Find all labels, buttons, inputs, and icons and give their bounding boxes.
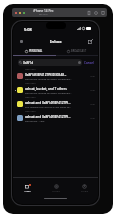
button[interactable]: Cancel [84, 61, 94, 65]
button[interactable]: Clear search [78, 61, 81, 64]
button[interactable]: BROADCAST [55, 47, 98, 55]
staticText: ashvat.eth unread an event scheduled… [25, 91, 72, 94]
staticText: Profile [81, 190, 88, 193]
staticText: PERSONAL [29, 49, 43, 53]
staticText: Inbox [50, 39, 62, 45]
staticText: iPhone 14 Pro [33, 9, 54, 13]
button[interactable]: More options [101, 11, 105, 15]
staticText: 16m [90, 75, 95, 78]
button[interactable]: Screenshot [94, 11, 98, 15]
staticText: BROADCAST [71, 49, 87, 53]
staticText: 16m [90, 103, 95, 106]
staticText: MESSAGES [25, 82, 36, 85]
button[interactable]: Portals [42, 178, 70, 198]
button[interactable]: MESSAGES [13, 95, 98, 109]
button[interactable]: New message [88, 39, 93, 44]
button[interactable]: PERSONAL [13, 47, 55, 55]
staticText: ashvat.eth unread an event scheduled… [25, 77, 72, 80]
staticText: ashvat.eth · 16m [25, 119, 45, 122]
staticText: ashcat, bucket, and 7 others [25, 87, 67, 91]
staticText: ashvat and 0x8f14f3EF4127f9… [25, 115, 71, 119]
staticText: Portals [52, 190, 60, 193]
staticText: MESSAGES [25, 96, 36, 99]
button[interactable]: Chats [13, 178, 42, 198]
staticText: 0x8f14f3EF4127f93D30348... [25, 73, 67, 77]
staticText: Chats [24, 190, 31, 193]
staticText: MESSAGES [25, 110, 36, 113]
button[interactable]: Rotate device [87, 11, 91, 15]
staticText: MESSAGES [25, 68, 36, 71]
staticText: 16m [90, 89, 95, 92]
button[interactable]: MESSAGES [13, 109, 98, 123]
button[interactable]: Account [20, 40, 23, 43]
button[interactable]: MESSAGES [13, 81, 98, 95]
staticText: 0x8f1d [23, 61, 34, 65]
staticText: 16m [90, 117, 95, 120]
button[interactable]: 0x8f1d [18, 59, 82, 66]
button[interactable]: Profile [70, 178, 98, 198]
staticText: ashvat and 0x8f14f3EF4127f9… [25, 101, 71, 105]
staticText: iOS 16.2 [39, 13, 48, 16]
staticText: you invited this chat as a chill small s… [25, 105, 72, 108]
button[interactable]: MESSAGES [13, 67, 98, 81]
staticText: 5:08 [24, 27, 32, 32]
